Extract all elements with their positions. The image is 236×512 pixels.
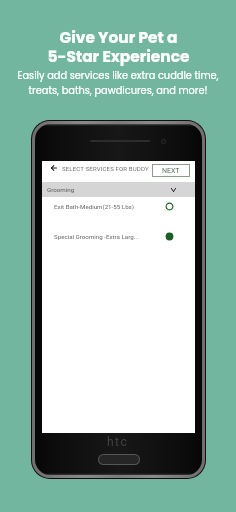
staticText: Exit Bath-Medium(21-55 Lbs) xyxy=(54,203,134,210)
staticText: Special Grooming -Extra Larg... xyxy=(54,233,139,240)
button[interactable]: Special Grooming -Extra Larg... xyxy=(54,221,174,251)
button[interactable]: Home xyxy=(99,455,139,464)
staticText: htc xyxy=(107,435,129,449)
staticText: NEXT xyxy=(162,167,180,175)
button[interactable]: Back xyxy=(46,160,62,176)
staticText: Grooming xyxy=(47,186,75,193)
staticText: SELECT SERVICES FOR BUDDY xyxy=(62,165,149,172)
staticText: Easily add services like extra cuddle ti… xyxy=(17,69,219,97)
staticText: Give Your Pet a 5-Star Experience xyxy=(47,27,190,67)
button[interactable]: Grooming xyxy=(47,182,176,197)
button[interactable]: NEXT xyxy=(153,165,189,176)
button[interactable]: Exit Bath-Medium(21-55 Lbs) xyxy=(54,191,174,221)
